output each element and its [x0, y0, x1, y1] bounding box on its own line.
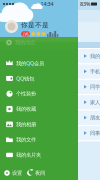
button[interactable]: 我的文件: [0, 132, 78, 147]
staticText: 同事: [90, 130, 100, 136]
staticText: 我的动态: [15, 39, 35, 46]
button[interactable]: 夜间: [27, 166, 54, 179]
button[interactable]: 我的名片夹: [0, 147, 78, 163]
button[interactable]: 我的收藏: [0, 101, 78, 117]
button[interactable]: 我的QQ会员: [0, 55, 78, 71]
button[interactable]: 我的相册: [0, 117, 78, 132]
button[interactable]: 家人: [78, 95, 100, 110]
staticText: 手机通讯录: [90, 68, 100, 75]
staticText: 我的好友: [90, 53, 100, 59]
staticText: 设置: [12, 170, 22, 176]
button[interactable]: 手机通讯录: [78, 64, 100, 79]
button[interactable]: 我的好友: [78, 49, 100, 63]
staticText: 夜间: [35, 170, 45, 176]
button[interactable]: 设置: [0, 166, 27, 179]
staticText: 我的相册: [16, 121, 36, 128]
staticText: 同学: [90, 84, 100, 90]
staticText: LV6: [22, 31, 28, 36]
staticText: 个性装扮: [16, 90, 36, 97]
staticText: 我的名片夹: [16, 152, 41, 158]
staticText: 你是不是: [21, 21, 49, 29]
button[interactable]: 同事: [78, 126, 100, 140]
button[interactable]: 我的动态: [0, 0, 78, 47]
staticText: 14:34: [40, 0, 53, 8]
staticText: 我的QQ会员: [16, 60, 44, 67]
staticText: 83%: [80, 0, 90, 8]
staticText: 我的文件: [16, 136, 36, 143]
staticText: 我的收藏: [16, 106, 36, 112]
staticText: 朋友: [90, 114, 100, 121]
button[interactable]: QQ钱包: [0, 71, 78, 86]
button[interactable]: 个性装扮: [0, 86, 78, 101]
staticText: QQ钱包: [16, 75, 34, 82]
button[interactable]: 同学: [78, 80, 100, 94]
button[interactable]: 朋友: [78, 111, 100, 125]
staticText: 家人: [90, 99, 100, 106]
